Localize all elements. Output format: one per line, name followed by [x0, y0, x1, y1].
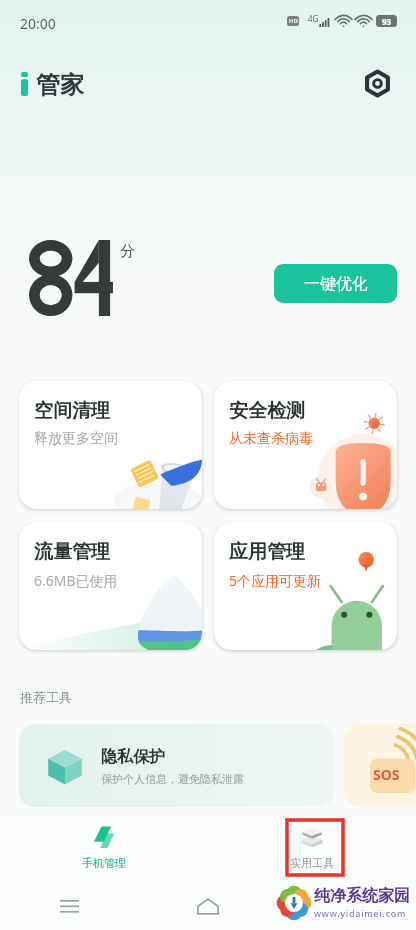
button[interactable]: Recents: [0, 882, 138, 930]
staticText: 手机管理: [82, 856, 126, 870]
button[interactable]: 应用管理: [214, 522, 397, 650]
button[interactable]: 隐私保护: [19, 724, 334, 807]
button[interactable]: Settings: [360, 66, 394, 100]
button[interactable]: 手机管理: [0, 826, 208, 870]
button[interactable]: 一键优化: [274, 264, 397, 303]
staticText: 空间清理: [34, 399, 110, 423]
staticText: 管家: [36, 70, 84, 100]
staticText: 93: [382, 16, 392, 27]
staticText: 释放更多空间: [34, 430, 118, 448]
staticText: 推荐工具: [20, 689, 72, 705]
staticText: 一键优化: [304, 274, 368, 294]
staticText: www.yidaimei.com: [314, 907, 407, 919]
staticText: 从未查杀病毒: [229, 430, 313, 448]
staticText: HD: [289, 17, 298, 25]
button[interactable]: 安全检测: [214, 381, 397, 509]
button[interactable]: 空间清理: [19, 381, 202, 509]
staticText: 6.6MB已使用: [34, 571, 118, 590]
staticText: 4G: [308, 13, 319, 24]
staticText: 实用工具: [290, 856, 334, 870]
staticText: 5个应用可更新: [229, 571, 322, 590]
staticText: 安全检测: [229, 399, 305, 423]
staticText: 应用管理: [229, 540, 305, 564]
staticText: 分: [120, 242, 135, 261]
staticText: 流量管理: [34, 540, 110, 564]
button[interactable]: Home: [138, 882, 277, 930]
staticText: 隐私保护: [101, 747, 165, 767]
staticText: 20:00: [20, 14, 56, 33]
staticText: 保护个人信息，避免隐私泄露: [101, 772, 244, 786]
button[interactable]: 流量管理: [19, 522, 202, 650]
staticText: SOS: [373, 765, 400, 784]
staticText: 纯净系统家园: [314, 886, 410, 906]
button[interactable]: SOS emergency: [344, 724, 416, 807]
button[interactable]: 实用工具: [208, 826, 416, 870]
